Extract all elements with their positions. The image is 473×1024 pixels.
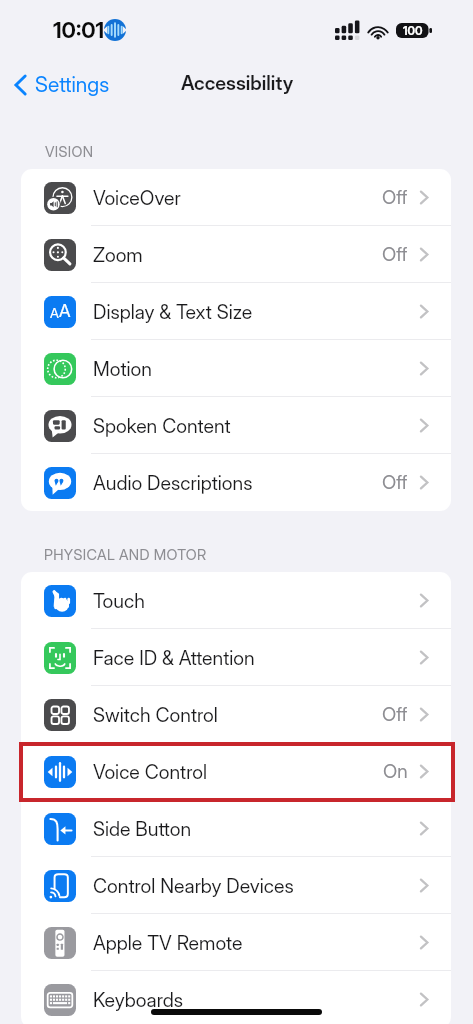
staticText: Off: [382, 703, 408, 726]
staticText: Touch: [93, 589, 145, 613]
staticText: Control Nearby Devices: [93, 874, 294, 898]
staticText: Off: [382, 186, 408, 209]
button[interactable]: Side Button: [21, 800, 451, 857]
button[interactable]: Audio Descriptions: [21, 454, 451, 511]
button[interactable]: Zoom: [21, 226, 451, 283]
staticText: Keyboards: [93, 988, 184, 1012]
staticText: Off: [382, 471, 408, 494]
staticText: Voice Control: [93, 760, 207, 784]
staticText: VISION: [45, 143, 94, 161]
staticText: Face ID & Attention: [93, 646, 255, 670]
button[interactable]: Spoken Content: [21, 397, 451, 454]
button[interactable]: Voice Control: [21, 743, 451, 800]
staticText: Zoom: [93, 243, 143, 267]
staticText: Motion: [93, 357, 152, 381]
button[interactable]: VoiceOver: [21, 169, 451, 226]
staticText: Apple TV Remote: [93, 931, 243, 955]
staticText: Spoken Content: [93, 414, 231, 438]
staticText: 10:01: [53, 17, 105, 44]
staticText: Display & Text Size: [93, 300, 253, 324]
staticText: PHYSICAL AND MOTOR: [44, 546, 207, 564]
button[interactable]: Face ID & Attention: [21, 629, 451, 686]
staticText: Settings: [35, 72, 110, 97]
staticText: A: [50, 305, 59, 321]
staticText: Switch Control: [93, 703, 218, 727]
staticText: A: [59, 300, 71, 321]
staticText: Off: [382, 243, 408, 266]
button[interactable]: Switch Control: [21, 686, 451, 743]
button[interactable]: Back to Settings: [10, 68, 114, 101]
staticText: 100: [403, 24, 423, 38]
staticText: On: [383, 760, 408, 783]
staticText: Audio Descriptions: [93, 471, 253, 495]
button[interactable]: Keyboards: [21, 971, 451, 1024]
button[interactable]: Touch: [21, 572, 451, 629]
button[interactable]: Motion: [21, 340, 451, 397]
staticText: VoiceOver: [93, 186, 181, 210]
button[interactable]: Control Nearby Devices: [21, 857, 451, 914]
staticText: Side Button: [93, 817, 192, 841]
button[interactable]: Apple TV Remote: [21, 914, 451, 971]
staticText: Accessibility: [181, 71, 294, 95]
button[interactable]: A: [21, 283, 451, 340]
